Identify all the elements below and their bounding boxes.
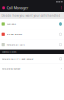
staticText: Forward calls if I don't answer	[2, 57, 34, 60]
button[interactable]: Available	[0, 19, 64, 29]
staticText: Forward all calls	[7, 43, 25, 46]
button[interactable]: Forward calls if I don't answer	[0, 54, 64, 64]
button[interactable]: Do not disturb	[0, 29, 64, 39]
button[interactable]: Forward all calls	[0, 40, 64, 50]
staticText: Forwarding number	[2, 67, 21, 70]
staticText: Available	[7, 23, 16, 25]
staticText: Call Manager	[7, 5, 28, 10]
button[interactable]: More options	[59, 4, 64, 12]
staticText: Do not disturb	[7, 33, 22, 36]
button[interactable]: Forwarding number	[0, 64, 64, 74]
staticText: Decide how you want your calls handled	[1, 13, 60, 17]
staticText: Additional Options	[1, 50, 16, 53]
button[interactable]: Menu	[0, 4, 7, 12]
